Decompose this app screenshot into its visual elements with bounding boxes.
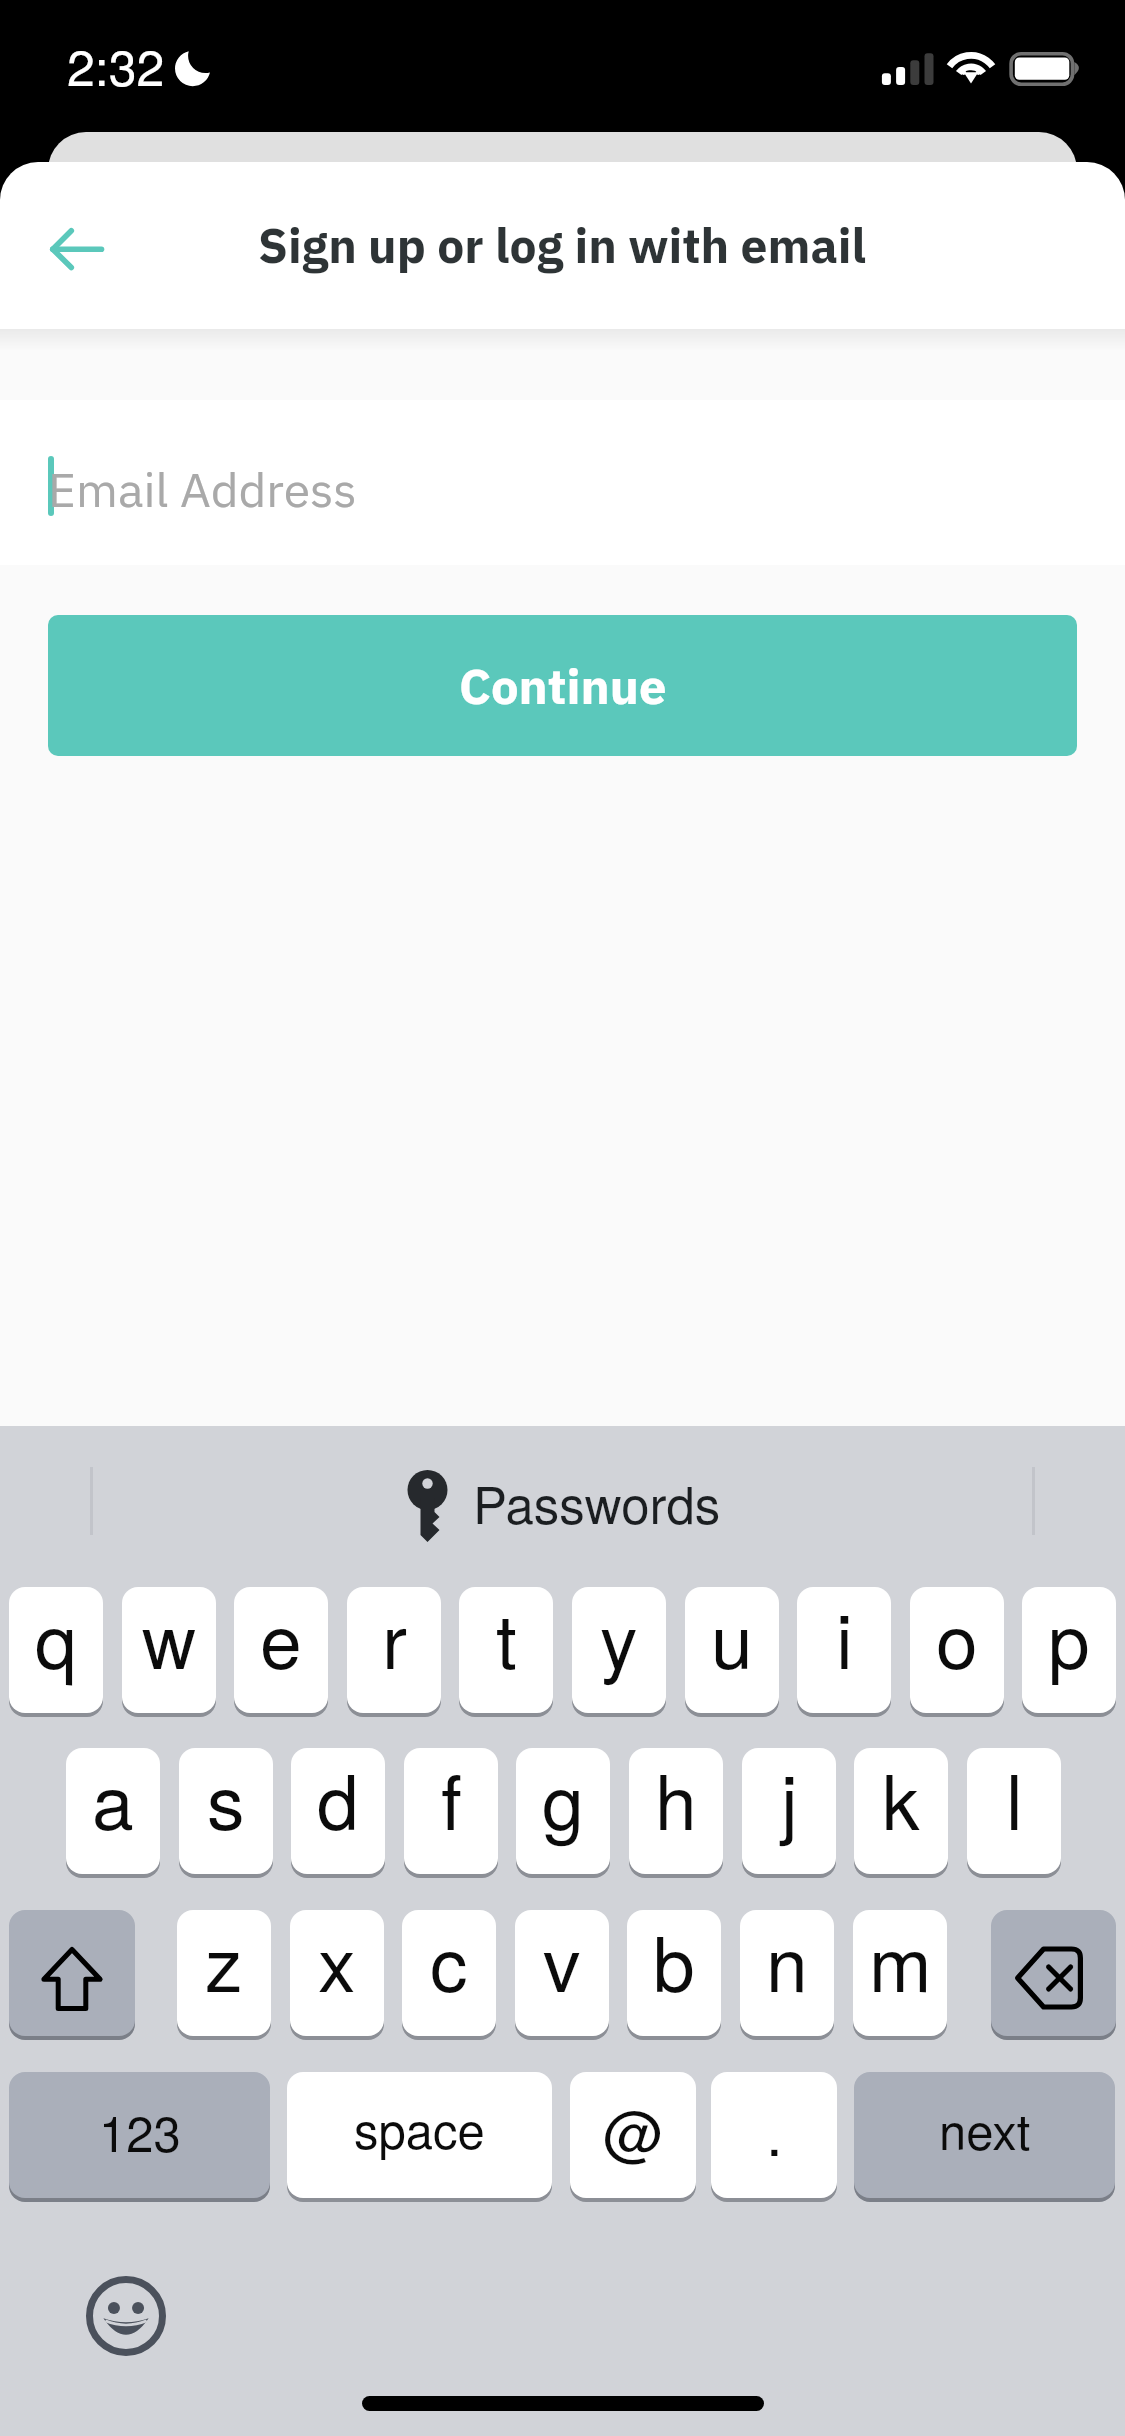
staticText: u [711, 1587, 753, 1690]
staticText: Sign up or log in with email [258, 214, 867, 276]
staticText: 123 [99, 2096, 181, 2166]
button[interactable]: s [179, 1748, 273, 1874]
staticText: s [207, 1748, 245, 1851]
staticText: l [1006, 1748, 1023, 1851]
staticText: t [496, 1587, 517, 1690]
staticText: e [260, 1587, 302, 1690]
staticText: 2:32 [67, 29, 165, 101]
button[interactable]: f [404, 1748, 498, 1874]
staticText: k [882, 1748, 920, 1851]
staticText: o [936, 1587, 978, 1690]
button[interactable]: n [740, 1910, 834, 2036]
button[interactable]: h [629, 1748, 723, 1874]
button[interactable]: y [572, 1587, 666, 1713]
staticText: j [781, 1748, 798, 1851]
staticText: d [317, 1748, 359, 1851]
button[interactable]: Emoji keyboard [86, 2276, 166, 2356]
button[interactable]: g [516, 1748, 610, 1874]
staticText: n [766, 1910, 808, 2013]
button[interactable]: i [797, 1587, 891, 1713]
staticText: v [543, 1910, 581, 2013]
staticText: next [939, 2094, 1031, 2164]
staticText: @ [603, 2087, 664, 2173]
staticText: x [318, 1910, 356, 2013]
button[interactable]: u [685, 1587, 779, 1713]
button[interactable]: p [1022, 1587, 1116, 1713]
staticText: g [542, 1748, 584, 1851]
button[interactable]: 123 [9, 2072, 270, 2198]
staticText: h [655, 1748, 697, 1851]
staticText: y [600, 1587, 638, 1690]
button[interactable]: j [742, 1748, 836, 1874]
staticText: c [430, 1910, 468, 2013]
staticText: Email Address [48, 458, 357, 520]
staticText: space [354, 2093, 485, 2163]
staticText: z [205, 1910, 243, 2013]
button[interactable]: b [627, 1910, 721, 2036]
button[interactable]: q [9, 1587, 103, 1713]
staticText: r [382, 1587, 407, 1690]
staticText: i [836, 1587, 853, 1690]
button[interactable]: l [967, 1748, 1061, 1874]
staticText: b [653, 1910, 695, 2013]
staticText: f [441, 1748, 462, 1851]
button[interactable]: e [234, 1587, 328, 1713]
staticText: Passwords [473, 1465, 721, 1538]
button[interactable]: k [854, 1748, 948, 1874]
staticText: . [766, 2087, 783, 2173]
button[interactable]: v [515, 1910, 609, 2036]
button[interactable]: next [854, 2072, 1115, 2198]
button[interactable]: Passwords [402, 1462, 722, 1562]
button[interactable]: t [459, 1587, 553, 1713]
button[interactable] [9, 1910, 135, 2036]
staticText: Continue [459, 654, 667, 718]
staticText: w [142, 1587, 197, 1690]
staticText: q [35, 1587, 77, 1690]
button[interactable]: z [177, 1910, 271, 2036]
button[interactable]: d [291, 1748, 385, 1874]
button[interactable]: a [66, 1748, 160, 1874]
staticText: m [869, 1910, 932, 2013]
staticText: a [92, 1748, 134, 1851]
button[interactable]: w [122, 1587, 216, 1713]
button[interactable]: m [853, 1910, 947, 2036]
button[interactable]: @ [570, 2072, 696, 2198]
button[interactable]: space [287, 2072, 552, 2198]
button[interactable]: c [402, 1910, 496, 2036]
staticText: p [1048, 1587, 1090, 1690]
button[interactable]: o [910, 1587, 1004, 1713]
button[interactable]: . [711, 2072, 837, 2198]
button[interactable]: x [290, 1910, 384, 2036]
button[interactable]: Back [32, 210, 122, 290]
button[interactable] [991, 1910, 1116, 2036]
button[interactable]: r [347, 1587, 441, 1713]
button[interactable]: Continue [48, 615, 1077, 756]
